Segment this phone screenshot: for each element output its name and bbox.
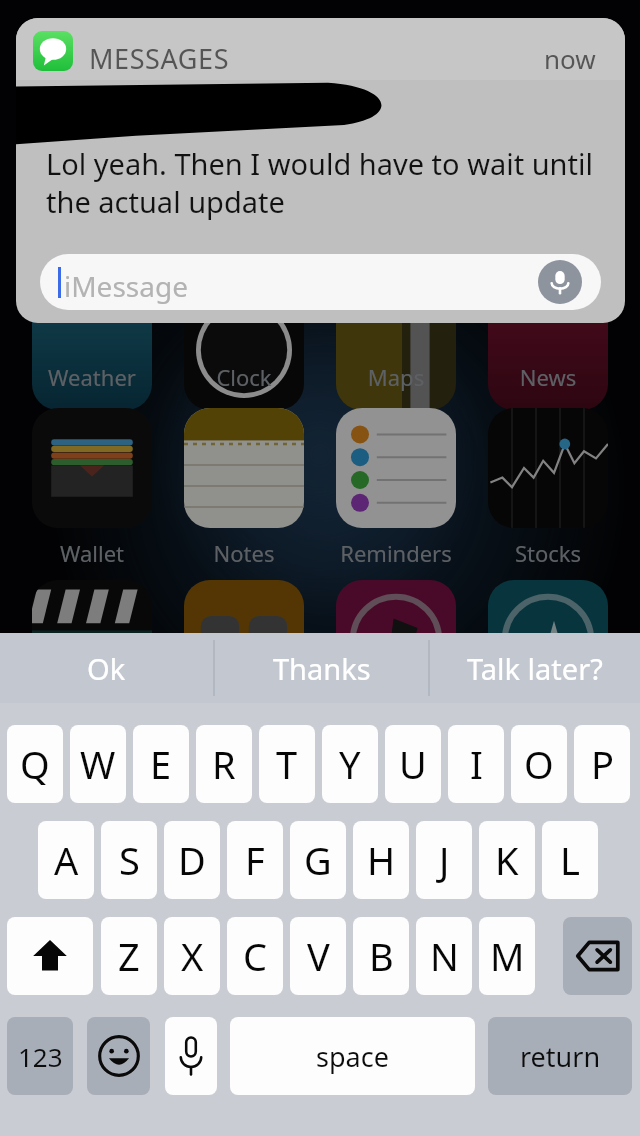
button[interactable] [336,580,456,700]
button[interactable]: Thanks [215,633,428,703]
staticText: now [544,41,596,76]
staticText: Wallet [2,538,182,568]
button[interactable]: H [353,821,409,899]
button[interactable]: V [290,917,346,995]
staticText: U [399,738,427,790]
button[interactable] [488,580,608,700]
button[interactable]: C [227,917,283,995]
button[interactable]: O [511,725,567,803]
staticText: Stocks [458,538,638,568]
button[interactable]: R [196,725,252,803]
button[interactable]: MESSAGES [16,18,625,323]
button[interactable]: iMessage [40,254,601,310]
button[interactable]: Y [322,725,378,803]
staticText: MESSAGES [89,40,230,77]
button[interactable] [184,580,304,700]
staticText: L [560,834,580,886]
staticText: D [178,834,206,886]
staticText: H [367,834,396,886]
staticText: K [495,834,519,886]
button[interactable]: F [227,821,283,899]
button[interactable]: E [133,725,189,803]
staticText: E [150,738,172,790]
button[interactable]: 123 [7,1017,73,1095]
staticText: R [212,738,236,790]
button[interactable]: Q [7,725,63,803]
button[interactable]: Backspace [563,917,632,995]
button[interactable]: K [479,821,535,899]
button[interactable]: P [574,725,630,803]
button[interactable]: X [164,917,220,995]
button[interactable] [184,408,304,528]
staticText: Q [20,738,50,790]
button[interactable]: S [101,821,157,899]
staticText: Ok [87,649,126,688]
button[interactable]: D [164,821,220,899]
staticText: I [470,738,483,790]
staticText: F [245,834,265,886]
button[interactable]: I [448,725,504,803]
button[interactable] [32,408,152,528]
button[interactable] [336,408,456,528]
button[interactable]: G [290,821,346,899]
button[interactable]: W [70,725,126,803]
button[interactable]: Dictate [538,260,582,304]
staticText: Z [118,930,140,982]
staticText: Maps [306,362,486,392]
staticText: P [591,738,614,790]
staticText: Lol yeah. Then I would have to wait unti… [46,144,606,221]
button[interactable]: M [479,917,535,995]
staticText: J [439,834,450,886]
button[interactable]: Dictation [165,1017,217,1095]
staticText: 123 [18,1039,63,1074]
staticText: C [243,930,268,982]
staticText: V [307,930,330,982]
button[interactable] [32,580,152,700]
button[interactable]: space [230,1017,475,1095]
staticText: M [490,930,525,982]
staticText: Thanks [273,649,371,688]
staticText: return [520,1038,601,1075]
button[interactable]: return [488,1017,632,1095]
button[interactable]: A [38,821,94,899]
staticText: Reminders [306,538,486,568]
button[interactable]: Emoji [87,1017,150,1095]
staticText: W [80,738,116,790]
button[interactable]: Shift [7,917,93,995]
staticText: T [276,738,298,790]
button[interactable]: N [416,917,472,995]
button[interactable] [32,290,152,410]
button[interactable] [336,290,456,410]
staticText: S [119,834,140,886]
button[interactable] [488,408,608,528]
button[interactable]: Talk later? [430,633,640,703]
staticText: O [524,738,554,790]
button[interactable]: U [385,725,441,803]
staticText: space [316,1038,389,1075]
staticText: A [54,834,79,886]
staticText: News [458,362,638,392]
button[interactable] [488,290,608,410]
staticText: iMessage [64,267,188,305]
button[interactable] [184,290,304,410]
button[interactable]: Z [101,917,157,995]
button[interactable]: J [416,821,472,899]
button[interactable]: L [542,821,598,899]
staticText: Clock [154,362,334,392]
staticText: X [181,930,204,982]
staticText: G [304,834,332,886]
staticText: Talk later? [467,649,603,688]
staticText: Y [339,738,361,790]
staticText: Notes [154,538,334,568]
button[interactable]: T [259,725,315,803]
button[interactable]: Ok [0,633,213,703]
staticText: N [430,930,459,982]
staticText: Weather [2,362,182,392]
button[interactable]: B [353,917,409,995]
staticText: B [369,930,394,982]
